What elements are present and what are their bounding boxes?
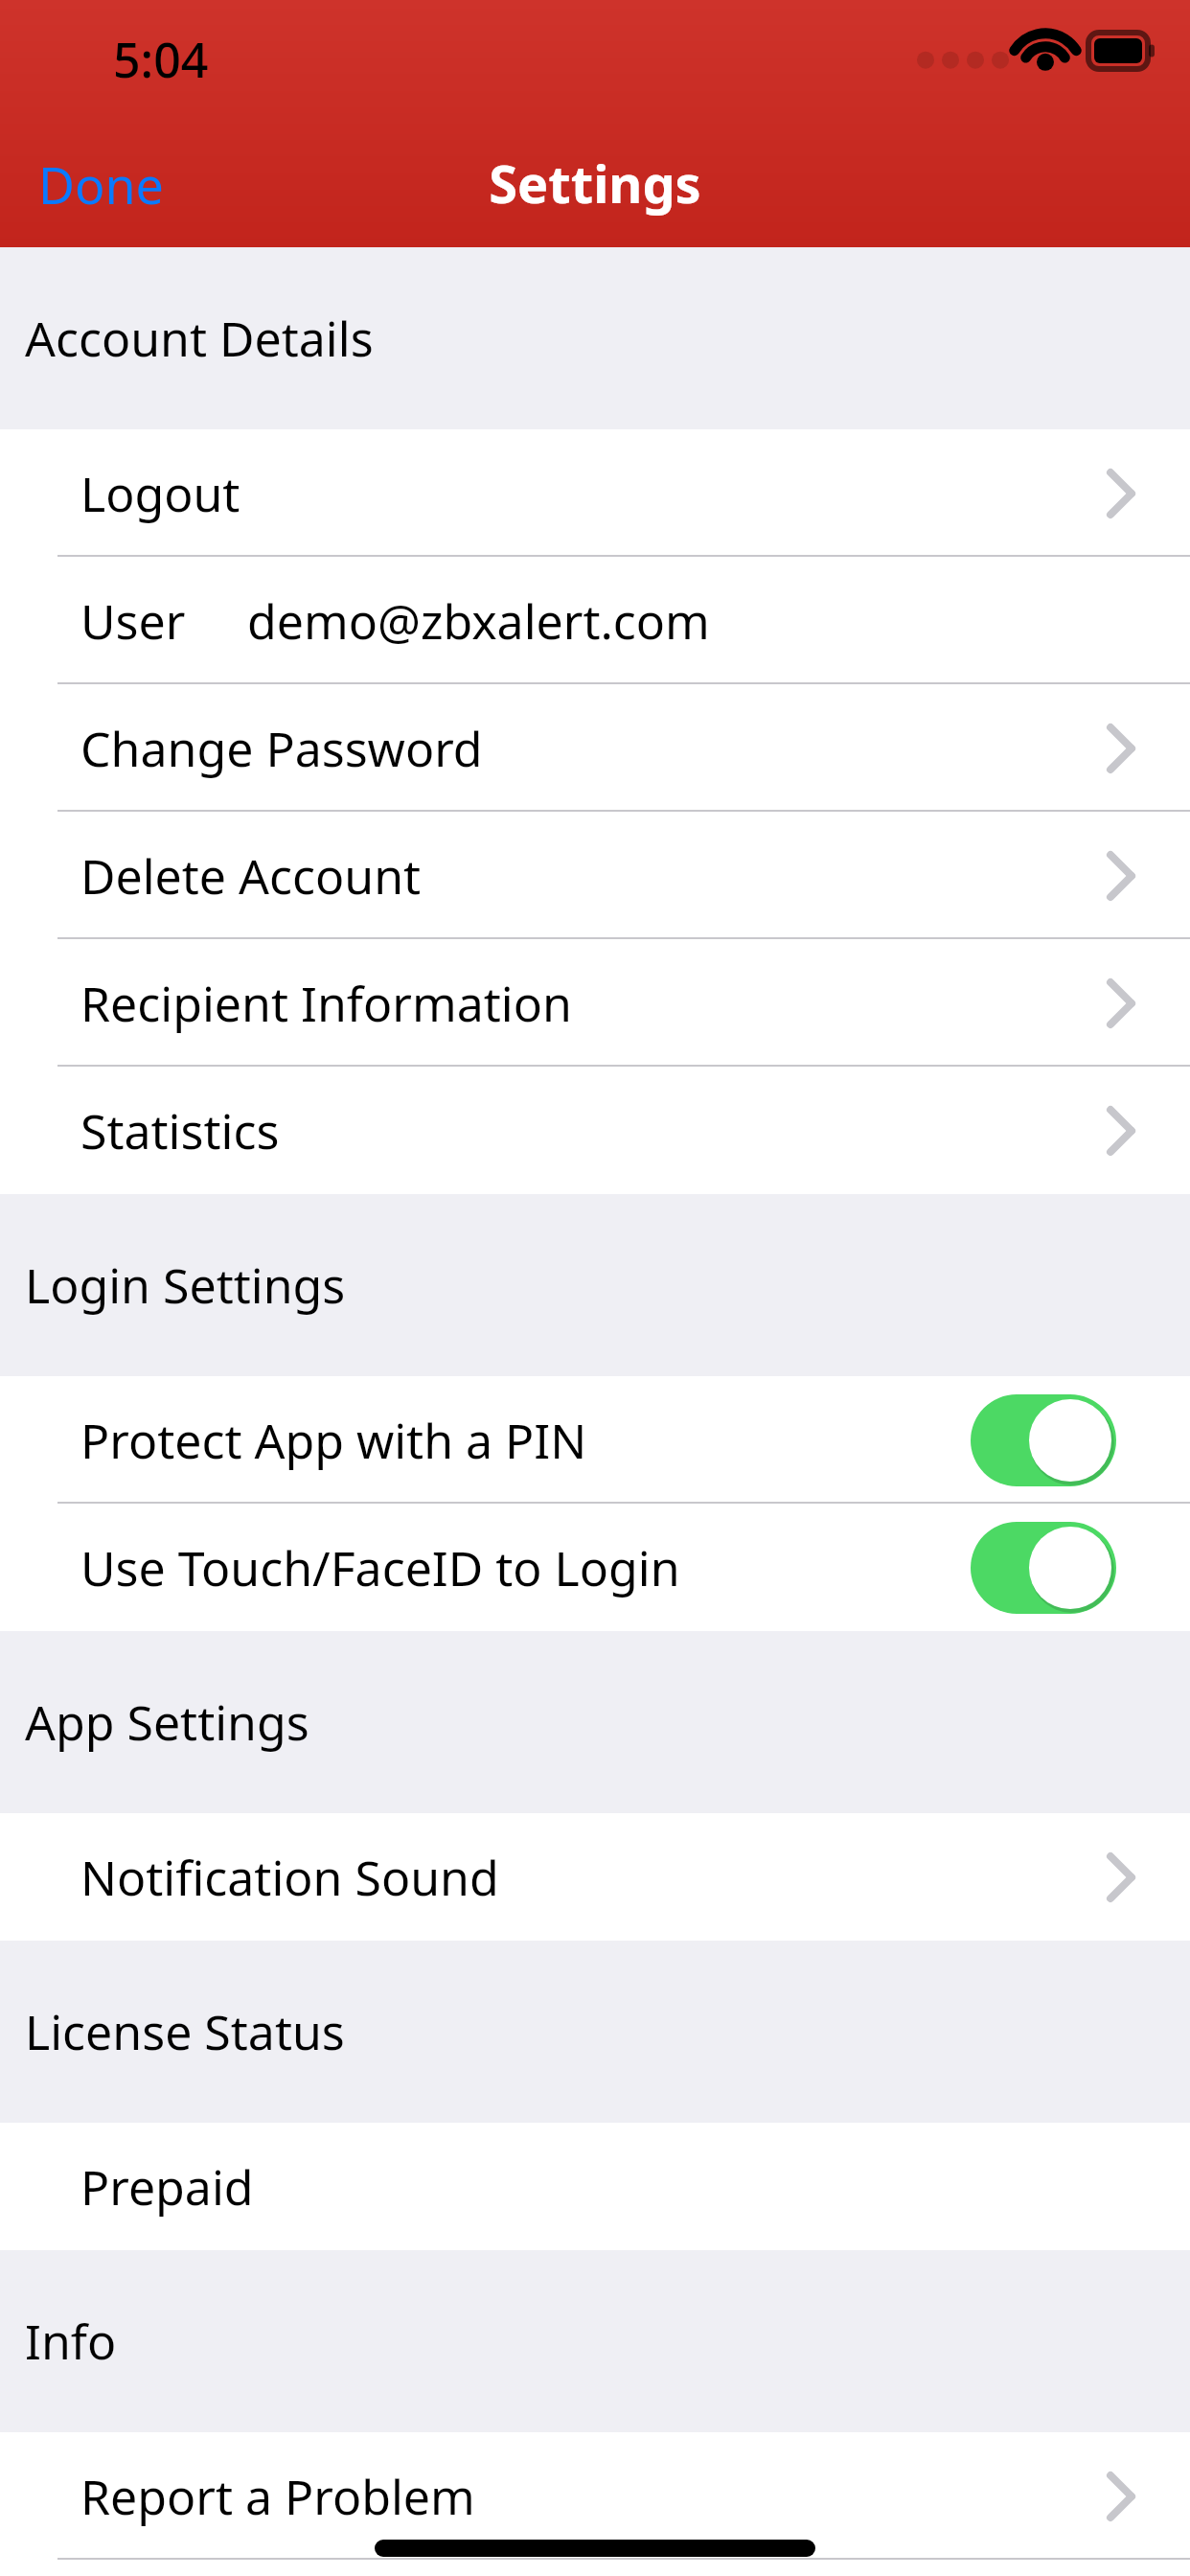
staticText: Protect App with a PIN (80, 1408, 587, 1473)
other: Change Password (1108, 724, 1136, 773)
button[interactable]: Protect App with a PIN (971, 1394, 1116, 1486)
staticText: Report a Problem (80, 2464, 475, 2529)
other: Notification Sound (1108, 1852, 1136, 1902)
button[interactable]: Notification Sound (0, 1813, 1190, 1941)
staticText: User (80, 588, 186, 654)
staticText: demo@zbxalert.com (247, 588, 710, 654)
staticText: Recipient Information (80, 971, 572, 1036)
staticText: App Settings (25, 1690, 309, 1755)
other: Statistics (1108, 1106, 1136, 1156)
staticText: Settings (489, 148, 701, 218)
button[interactable]: Change Password (0, 684, 1190, 812)
staticText: Login Settings (25, 1253, 346, 1318)
button[interactable]: Use Touch/FaceID to Login (0, 1504, 1190, 1631)
button[interactable]: User (0, 557, 1190, 684)
button[interactable]: Recipient Information (0, 939, 1190, 1067)
other: Delete Account (1108, 851, 1136, 901)
button[interactable]: Done (38, 150, 164, 218)
staticText: Notification Sound (80, 1845, 499, 1910)
button[interactable]: Statistics (0, 1067, 1190, 1194)
staticText: Use Touch/FaceID to Login (80, 1535, 680, 1600)
staticText: Delete Account (80, 843, 422, 908)
button[interactable]: Protect App with a PIN (0, 1376, 1190, 1504)
button[interactable]: Report a Problem (0, 2432, 1190, 2560)
staticText: Done (38, 150, 164, 218)
staticText: License Status (25, 1999, 345, 2064)
button[interactable]: Prepaid (0, 2123, 1190, 2250)
button[interactable]: Use Touch/FaceID to Login (971, 1522, 1116, 1614)
other: Recipient Information (1108, 978, 1136, 1028)
staticText: Change Password (80, 716, 483, 781)
other: Logout (1108, 469, 1136, 518)
button[interactable]: Delete Account (0, 812, 1190, 939)
staticText: Logout (80, 461, 240, 526)
staticText: Account Details (25, 306, 374, 371)
staticText: Statistics (80, 1098, 280, 1163)
staticText: Prepaid (80, 2154, 254, 2219)
staticText: Info (25, 2309, 117, 2374)
staticText: 5:04 (113, 27, 209, 92)
button[interactable]: Logout (0, 429, 1190, 557)
other: Report a Problem (1108, 2472, 1136, 2521)
